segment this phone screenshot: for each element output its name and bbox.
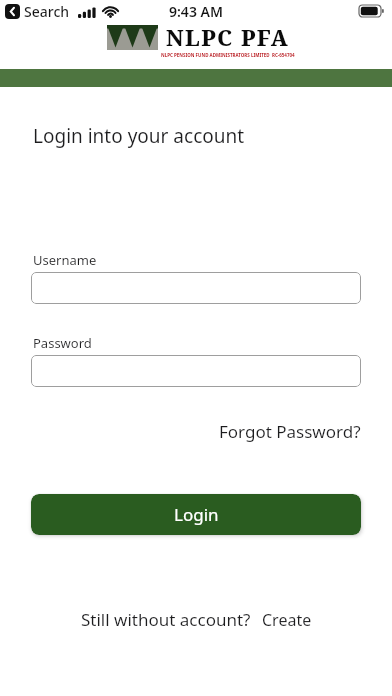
button[interactable] [5,4,20,19]
staticText: Username [33,251,97,269]
staticText: Still without account? [81,608,251,631]
staticText: Password [33,334,92,352]
staticText: 9:43 AM [169,2,223,21]
button[interactable]: Forgot Password? [219,420,361,443]
button[interactable] [31,355,361,387]
button[interactable]: Create [262,609,312,631]
button[interactable] [31,272,361,304]
staticText: Login [174,503,219,526]
staticText: Search [24,2,70,21]
button[interactable]: Login [31,494,361,535]
staticText: NLPC PENSION FUND ADMINISTRATORS LIMITED… [161,52,295,57]
staticText: Login into your account [33,123,245,149]
staticText: NLPC PFA [166,22,290,52]
